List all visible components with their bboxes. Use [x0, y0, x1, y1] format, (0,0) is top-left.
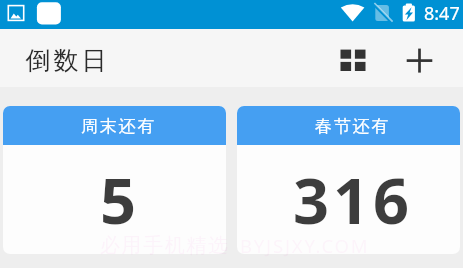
staticText: 必用手机精选	[100, 233, 230, 258]
staticText: 8:47	[424, 1, 460, 26]
button[interactable]: Grid view	[329, 36, 377, 84]
button[interactable]: 周末还有	[3, 106, 226, 254]
staticText: 春节还有	[315, 116, 391, 137]
staticText: 5	[100, 157, 141, 243]
staticText: 倒数日	[24, 45, 108, 76]
button[interactable]: 春节还有	[237, 106, 460, 254]
staticText: BYJSJXY.COM	[240, 233, 370, 258]
staticText: 周末还有	[81, 116, 157, 137]
staticText: 316	[293, 157, 414, 243]
button[interactable]: Add countdown	[396, 36, 444, 84]
